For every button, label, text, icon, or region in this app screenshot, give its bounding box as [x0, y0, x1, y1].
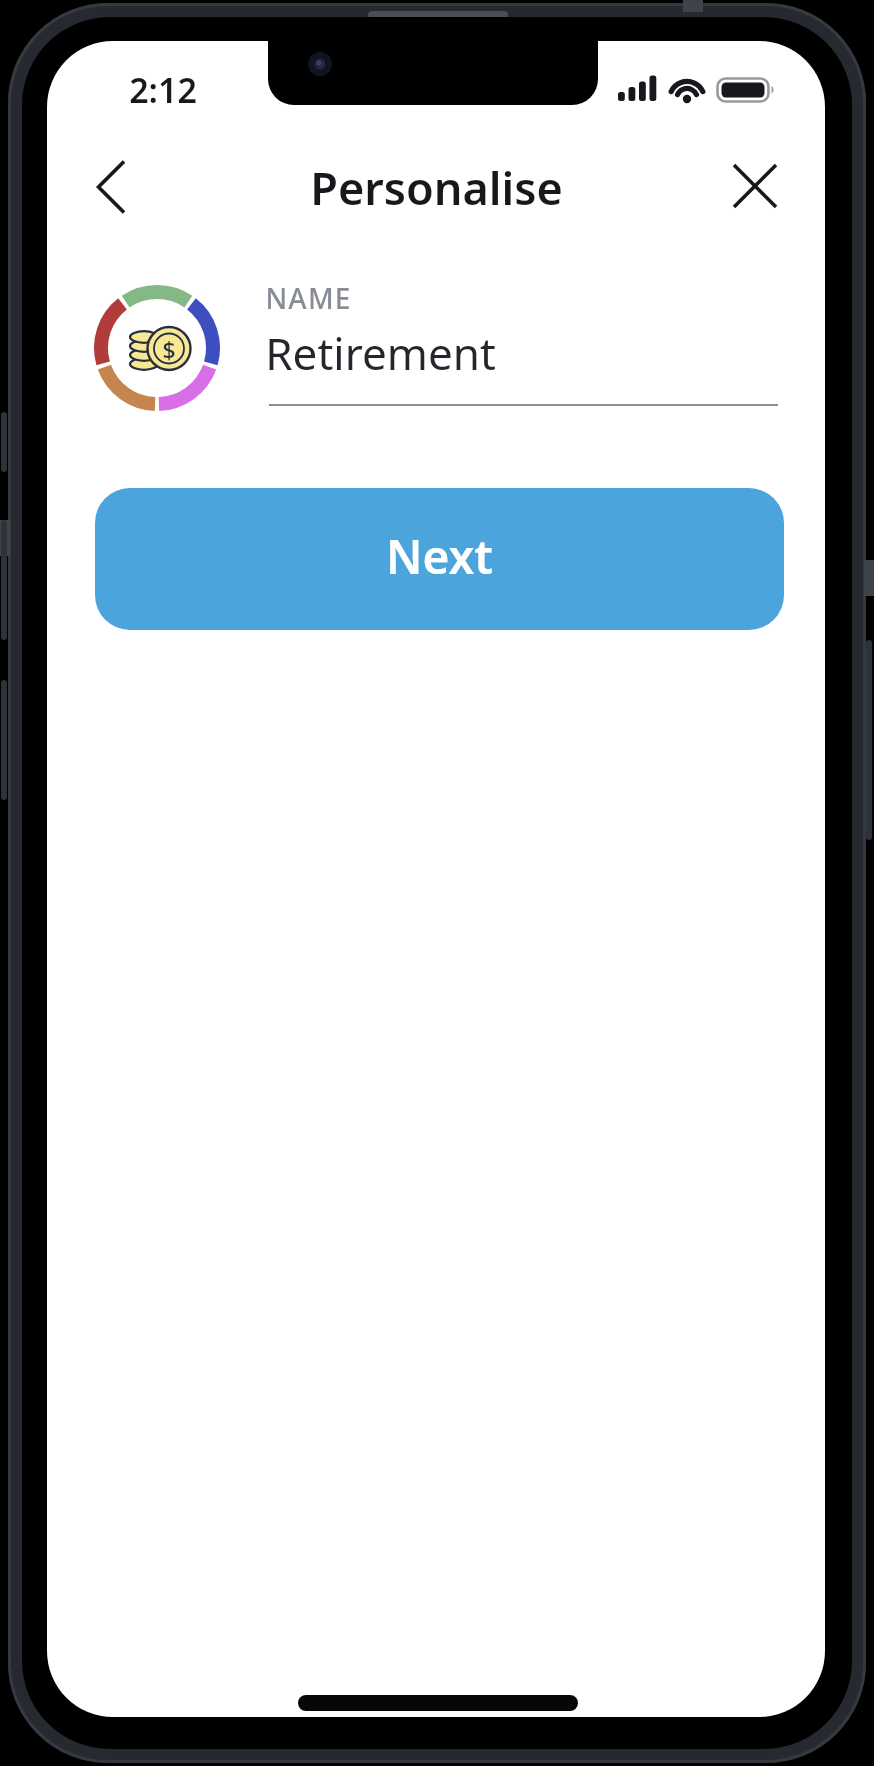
button[interactable]	[81, 145, 141, 229]
staticText: 2:12	[129, 67, 197, 109]
button[interactable]	[713, 144, 797, 228]
staticText: $	[162, 334, 176, 365]
staticText: Retirement	[265, 323, 496, 383]
staticText: Next	[386, 525, 493, 588]
staticText: Personalise	[310, 157, 563, 218]
staticText: NAME	[265, 279, 352, 317]
button[interactable]: Next	[95, 488, 784, 630]
button[interactable]: NAME	[265, 279, 779, 409]
